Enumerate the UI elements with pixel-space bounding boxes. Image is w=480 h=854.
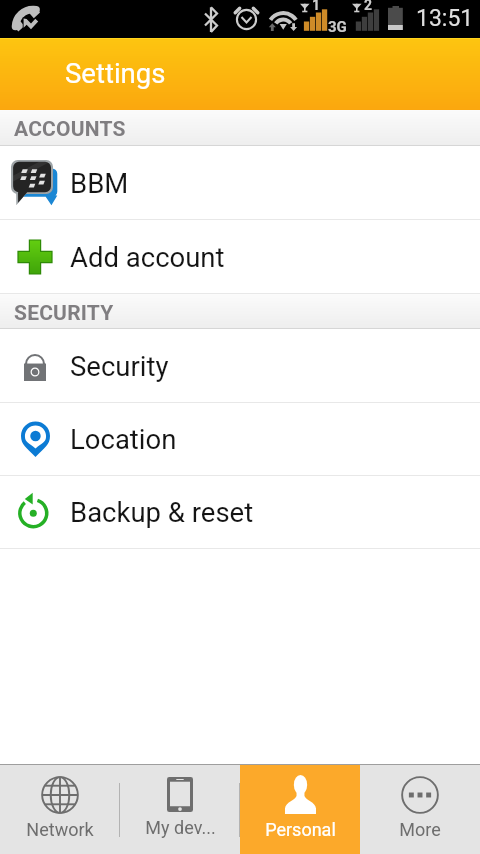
button[interactable]: Security	[0, 329, 480, 403]
staticText: Backup & reset	[70, 496, 254, 528]
staticText: Network	[26, 819, 94, 840]
staticText: Location	[70, 423, 177, 455]
staticText: 13:51	[416, 5, 474, 32]
staticText: ACCOUNTS	[14, 117, 126, 142]
staticText: 2	[364, 0, 373, 13]
button[interactable]: Backup & reset	[0, 476, 480, 549]
button[interactable]: Add account	[0, 220, 480, 294]
staticText: Settings	[65, 57, 166, 89]
staticText: Personal	[265, 819, 336, 840]
button[interactable]: Network	[0, 765, 120, 854]
staticText: SECURITY	[14, 301, 114, 326]
staticText: 3G	[328, 18, 347, 36]
staticText: My dev...	[145, 817, 216, 838]
button[interactable]: Location	[0, 403, 480, 476]
button[interactable]: More	[360, 765, 480, 854]
button[interactable]: BBM	[0, 146, 480, 220]
staticText: BBM	[70, 167, 129, 199]
staticText: Add account	[70, 241, 225, 273]
staticText: More	[399, 819, 441, 840]
button[interactable]: My dev...	[120, 765, 240, 854]
button[interactable]: Personal	[240, 765, 360, 854]
staticText: 1	[312, 0, 321, 13]
staticText: Security	[70, 350, 169, 382]
